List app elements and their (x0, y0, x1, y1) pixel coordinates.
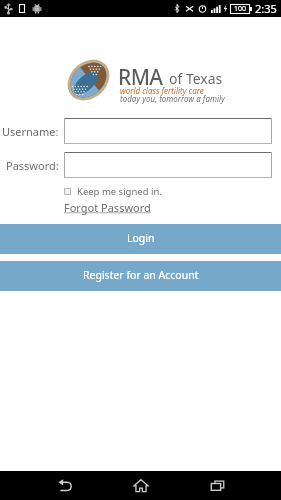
button[interactable]: Forgot Password (64, 200, 151, 215)
staticText: Login (127, 231, 155, 245)
staticText: Username: (2, 124, 59, 139)
button[interactable]: Home (118, 471, 163, 500)
staticText: 2:35 (255, 1, 277, 16)
staticText: Keep me signed in. (77, 185, 162, 198)
staticText: RMA (118, 63, 163, 92)
button[interactable]: Keep me signed in. (64, 185, 162, 198)
button[interactable]: Back (42, 471, 87, 500)
button[interactable] (64, 118, 272, 144)
button[interactable]: Recent apps (195, 471, 240, 500)
button[interactable]: Register for an Account (0, 261, 281, 291)
staticText: today you, tomorrow a family (120, 93, 225, 104)
button[interactable] (64, 152, 272, 178)
staticText: of Texas (169, 69, 223, 88)
staticText: Register for an Account (83, 268, 199, 282)
staticText: Forgot Password (64, 200, 151, 215)
staticText: world class fertility care (120, 85, 204, 96)
staticText: 100 (234, 4, 247, 14)
button[interactable]: Login (0, 224, 281, 254)
staticText: Password: (6, 158, 59, 173)
